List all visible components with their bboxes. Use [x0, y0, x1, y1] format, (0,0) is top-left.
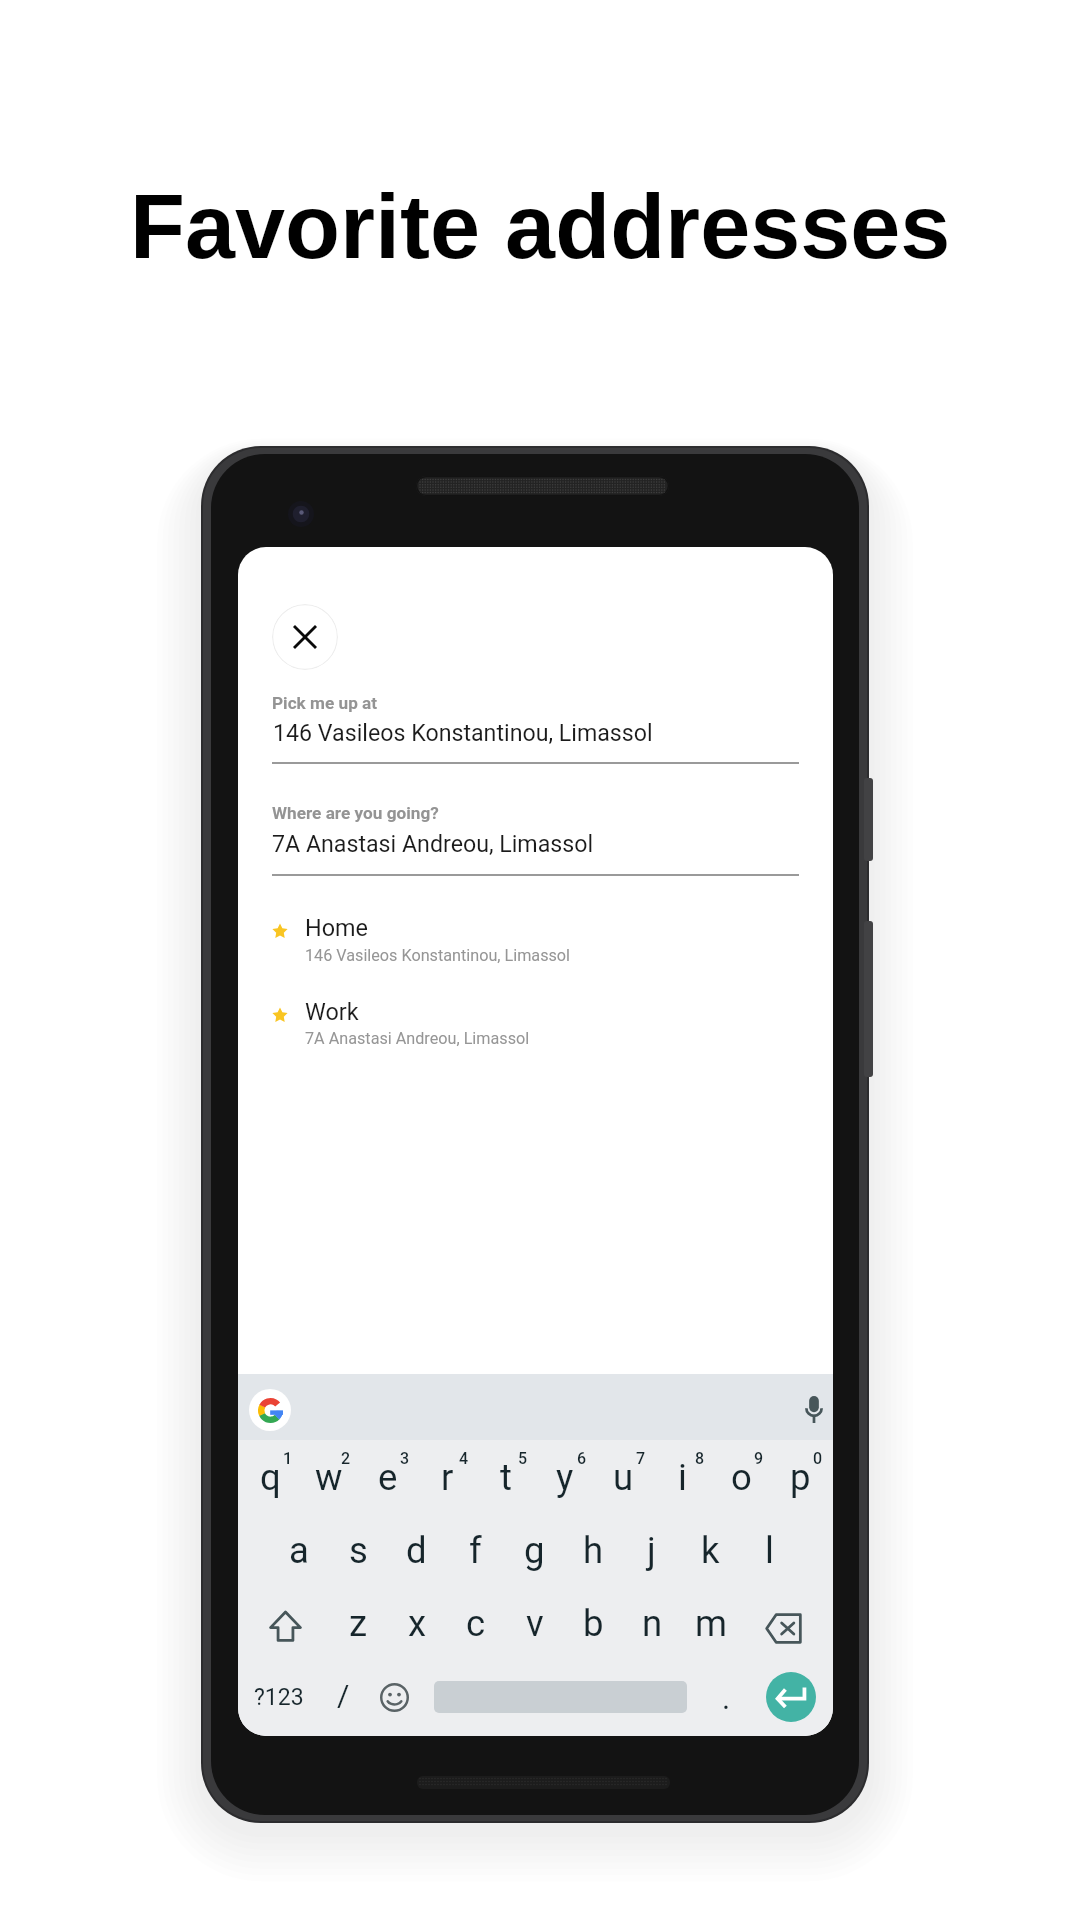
staticText: . [722, 1680, 731, 1716]
button[interactable]: Enter [766, 1672, 816, 1722]
button[interactable]: n [612, 1602, 692, 1649]
staticText: Where are you going? [272, 803, 439, 823]
staticText: c [466, 1602, 486, 1645]
staticText: s [349, 1529, 368, 1572]
button[interactable]: . [686, 1680, 766, 1720]
button[interactable]: d [376, 1529, 456, 1576]
staticText: 4 [459, 1449, 469, 1468]
button[interactable]: f [435, 1529, 515, 1576]
staticText: / [337, 1678, 350, 1713]
button[interactable]: q [238, 1456, 310, 1503]
button[interactable]: ?123 [239, 1684, 319, 1714]
staticText: x [408, 1602, 427, 1645]
staticText: d [406, 1529, 427, 1572]
staticText: a [289, 1529, 309, 1572]
button[interactable]: Voice input [795, 1391, 832, 1428]
button[interactable] [258, 905, 803, 981]
button[interactable]: c [436, 1602, 516, 1649]
staticText: Favorite addresses [130, 177, 951, 278]
staticText: Work [305, 998, 359, 1025]
button[interactable]: e [348, 1456, 428, 1503]
staticText: i [678, 1456, 687, 1499]
staticText: j [647, 1529, 656, 1572]
staticText: 6 [577, 1449, 587, 1468]
button[interactable]: w [289, 1456, 369, 1503]
staticText: v [526, 1602, 544, 1645]
staticText: y [556, 1456, 574, 1499]
staticText: h [583, 1529, 604, 1572]
button[interactable]: Shift [256, 1597, 314, 1655]
staticText: z [349, 1602, 368, 1645]
staticText: q [260, 1456, 281, 1499]
button[interactable]: j [611, 1529, 691, 1576]
button[interactable]: t [466, 1456, 546, 1503]
staticText: b [583, 1602, 604, 1645]
staticText: 146 Vasileos Konstantinou, Limassol [273, 719, 653, 746]
button[interactable]: / [303, 1678, 383, 1717]
staticText: 7A Anastasi Andreou, Limassol [305, 1029, 530, 1048]
staticText: f [469, 1529, 482, 1572]
staticText: r [441, 1456, 454, 1499]
button[interactable]: a [259, 1529, 339, 1576]
button[interactable]: Backspace [754, 1599, 812, 1657]
button[interactable]: Google search [249, 1389, 291, 1431]
button[interactable]: z [318, 1602, 398, 1649]
button[interactable]: l [729, 1529, 809, 1576]
button[interactable]: m [671, 1602, 751, 1649]
staticText: 7A Anastasi Andreou, Limassol [272, 830, 594, 857]
staticText: t [500, 1456, 512, 1499]
button[interactable]: i [642, 1456, 722, 1503]
staticText: p [790, 1456, 811, 1499]
button[interactable]: p [760, 1456, 833, 1503]
staticText: 3 [400, 1449, 410, 1468]
button[interactable]: o [701, 1456, 781, 1503]
staticText: 5 [518, 1449, 528, 1468]
staticText: w [315, 1456, 343, 1499]
button[interactable]: u [583, 1456, 663, 1503]
staticText: 7 [636, 1449, 646, 1468]
staticText: 0 [813, 1449, 823, 1468]
staticText: u [613, 1456, 634, 1499]
staticText: l [765, 1529, 774, 1572]
button[interactable]: Emoji [370, 1673, 418, 1721]
staticText: 146 Vasileos Konstantinou, Limassol [305, 946, 571, 965]
button[interactable]: x [377, 1602, 457, 1649]
staticText: o [731, 1456, 752, 1499]
button[interactable]: Close [272, 604, 338, 670]
button[interactable]: r [407, 1456, 487, 1503]
button[interactable]: h [553, 1529, 633, 1576]
staticText: 1 [283, 1449, 293, 1468]
staticText: m [695, 1602, 728, 1645]
button[interactable]: b [553, 1602, 633, 1649]
button[interactable]: k [670, 1529, 750, 1576]
staticText: 9 [754, 1449, 764, 1468]
staticText: Pick me up at [272, 693, 378, 713]
staticText: ?123 [254, 1684, 304, 1711]
staticText: Home [305, 914, 368, 941]
staticText: n [642, 1602, 663, 1645]
staticText: e [378, 1456, 398, 1499]
staticText: 2 [341, 1449, 351, 1468]
staticText: k [701, 1529, 720, 1572]
button[interactable]: s [318, 1529, 398, 1576]
staticText: 8 [695, 1449, 705, 1468]
button[interactable]: g [494, 1529, 574, 1576]
button[interactable]: v [495, 1602, 575, 1649]
button[interactable]: y [525, 1456, 605, 1503]
button[interactable] [258, 989, 803, 1065]
staticText: g [524, 1529, 545, 1572]
